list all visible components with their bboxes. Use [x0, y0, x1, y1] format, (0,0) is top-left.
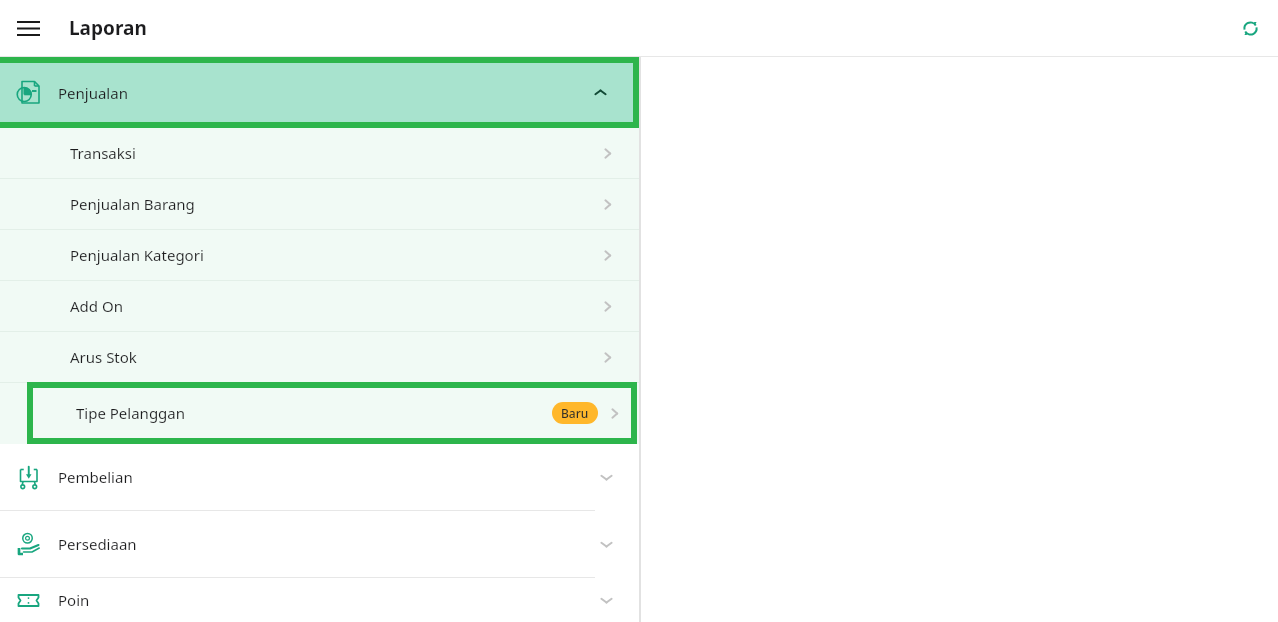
staticText: Baru: [561, 405, 589, 421]
button[interactable]: Open navigation menu: [9, 9, 47, 47]
staticText: Pembelian: [58, 467, 133, 487]
staticText: Penjualan Barang: [70, 194, 195, 214]
staticText: Tipe Pelanggan: [76, 403, 186, 423]
button[interactable]: Arus Stok: [0, 332, 639, 382]
staticText: Poin: [58, 590, 90, 610]
button[interactable]: Poin: [0, 578, 639, 622]
staticText: Persediaan: [58, 534, 137, 554]
staticText: Laporan: [69, 15, 147, 41]
button[interactable]: Penjualan Kategori: [0, 230, 639, 280]
staticText: Add On: [70, 296, 123, 316]
button[interactable]: Penjualan Barang: [0, 179, 639, 229]
button[interactable]: Penjualan: [0, 57, 639, 128]
button[interactable]: Add On: [0, 281, 639, 331]
staticText: Penjualan: [58, 83, 128, 103]
button[interactable]: Tipe Pelanggan: [27, 382, 637, 444]
staticText: Penjualan Kategori: [70, 245, 204, 265]
button[interactable]: Transaksi: [0, 128, 639, 178]
staticText: Arus Stok: [70, 347, 137, 367]
staticText: Transaksi: [70, 143, 136, 163]
button[interactable]: Refresh: [1230, 8, 1270, 48]
button[interactable]: Persediaan: [0, 511, 639, 577]
button[interactable]: Pembelian: [0, 444, 639, 510]
